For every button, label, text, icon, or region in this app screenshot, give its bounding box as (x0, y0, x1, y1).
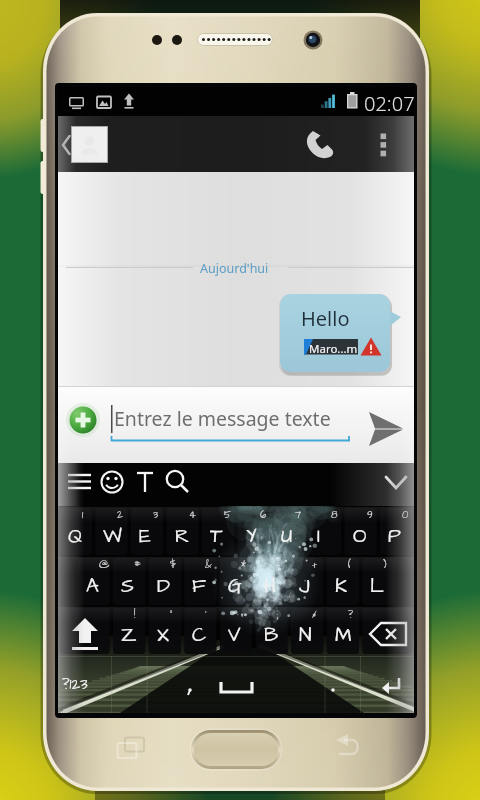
staticText: Hello (301, 305, 350, 332)
staticText: @ (99, 558, 110, 572)
button[interactable]: Add attachment (66, 402, 102, 438)
staticText: $ (170, 558, 176, 572)
staticText: 3 (153, 508, 159, 522)
staticText: " (170, 608, 173, 622)
staticText: Q (68, 522, 83, 550)
button[interactable]: Hide keyboard (382, 464, 414, 500)
staticText: Entrez le message texte (114, 405, 331, 432)
staticText: * (241, 558, 247, 572)
staticText: E (139, 522, 151, 550)
staticText: / (312, 608, 317, 622)
staticText: 6 (260, 508, 267, 522)
staticText: Y (246, 522, 257, 550)
staticText: D (157, 572, 170, 600)
staticText: 0 (402, 508, 409, 522)
staticText: B (264, 621, 279, 649)
staticText: 7 (295, 508, 302, 522)
staticText: T (210, 522, 223, 550)
button[interactable]: Emoji (96, 464, 126, 500)
button[interactable]: Search (160, 464, 192, 500)
staticText: 2 (117, 508, 123, 522)
staticText: P (388, 522, 401, 550)
staticText: V (228, 621, 241, 649)
staticText: J (299, 572, 310, 600)
staticText: 5 (224, 508, 232, 522)
staticText: 4 (189, 508, 196, 522)
staticText: G (228, 572, 242, 600)
button[interactable]: Keyboard menu (62, 464, 92, 500)
staticText: + (312, 558, 318, 572)
staticText: ; (277, 608, 279, 622)
staticText: Z (121, 621, 137, 649)
staticText: - (277, 558, 281, 572)
staticText: 9 (367, 508, 373, 522)
staticText: 1 (82, 508, 84, 522)
staticText: H (264, 572, 277, 600)
staticText: U (281, 522, 293, 550)
button[interactable]: Call (300, 120, 346, 172)
staticText: ( (348, 558, 351, 572)
staticText: A (86, 572, 99, 600)
staticText: M (335, 621, 352, 649)
staticText: O (353, 522, 367, 550)
staticText: C (192, 621, 207, 649)
staticText: K (335, 572, 348, 600)
staticText: Maro...m (309, 341, 358, 357)
staticText: S (121, 572, 134, 600)
staticText: F (192, 572, 206, 600)
staticText: 02:07 (364, 90, 415, 117)
staticText: L (370, 572, 384, 600)
staticText: ?123 (62, 674, 88, 695)
staticText: & (205, 558, 212, 572)
button[interactable]: Message input (104, 396, 354, 440)
staticText: 8 (331, 508, 338, 522)
staticText: ) (383, 558, 387, 572)
staticText: Aujourd'hui (200, 260, 269, 277)
staticText: R (175, 522, 190, 550)
button[interactable]: Contact avatar (70, 122, 114, 168)
staticText: : (241, 608, 243, 622)
button[interactable]: Send message (364, 404, 408, 448)
button[interactable]: Text style (130, 464, 158, 500)
staticText: ! (134, 608, 136, 622)
button[interactable]: More options (366, 120, 406, 172)
staticText: N (299, 621, 312, 649)
staticText: X (157, 621, 169, 649)
staticText: # (134, 558, 141, 572)
staticText: W (103, 522, 122, 550)
staticText: ? (348, 608, 354, 622)
staticText: I (317, 522, 321, 550)
staticText: ' (205, 608, 207, 622)
